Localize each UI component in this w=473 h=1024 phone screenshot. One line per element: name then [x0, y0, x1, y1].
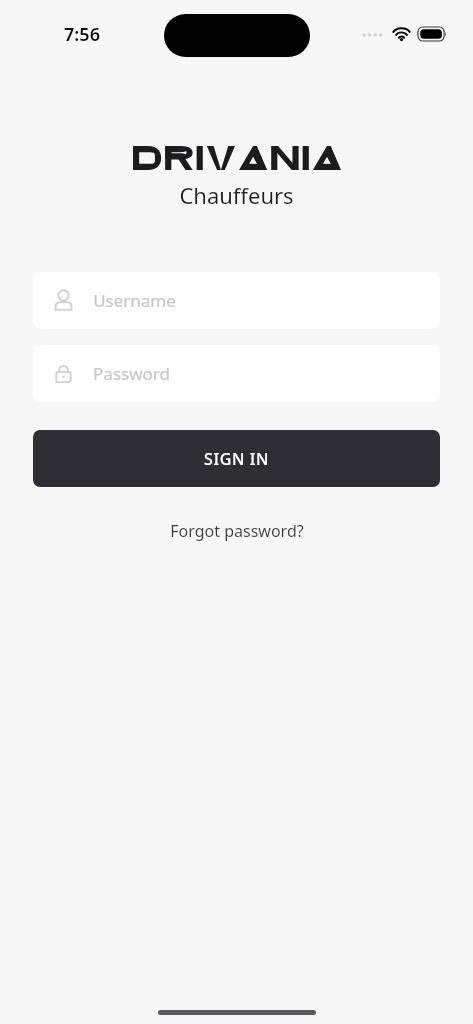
button[interactable]: Forgot password?	[0, 514, 473, 548]
button[interactable]: SIGN IN	[33, 430, 440, 487]
staticText: Chauffeurs	[179, 180, 294, 210]
button[interactable]: Username	[33, 272, 440, 329]
button[interactable]: Password	[33, 345, 440, 402]
staticText: Forgot password?	[170, 520, 304, 542]
staticText: Password	[93, 362, 170, 385]
staticText: SIGN IN	[204, 448, 269, 470]
staticText: 7:56	[64, 22, 100, 47]
staticText: Username	[93, 289, 176, 312]
